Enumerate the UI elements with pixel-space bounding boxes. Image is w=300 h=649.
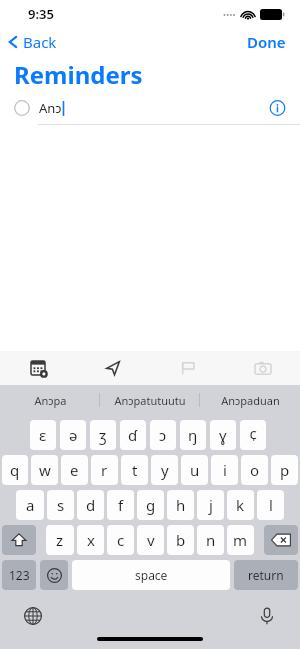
button[interactable]: space [72, 560, 230, 590]
button[interactable]: c [107, 525, 134, 555]
button[interactable]: ə [60, 420, 86, 450]
button[interactable]: j [197, 490, 224, 520]
button[interactable]: Shift [2, 525, 36, 555]
button[interactable]: q [2, 455, 28, 485]
button[interactable]: Change keyboard [20, 603, 46, 629]
button[interactable]: x [77, 525, 104, 555]
button[interactable]: a [16, 490, 44, 520]
button[interactable]: Anɔ [0, 92, 300, 124]
staticText: g [146, 495, 156, 515]
staticText: space [135, 567, 168, 583]
button[interactable]: ɗ [120, 420, 146, 450]
staticText: ʒ [99, 425, 107, 445]
staticText: ɣ [219, 425, 227, 445]
button[interactable]: ¢ [240, 420, 266, 450]
button[interactable]: Dictation [254, 603, 280, 629]
button[interactable]: d [77, 490, 104, 520]
button[interactable]: return [234, 560, 298, 590]
staticText: Anɔpaduan [221, 393, 280, 408]
staticText: e [70, 460, 79, 480]
button[interactable]: Anɔpatutuutu [100, 385, 200, 415]
button[interactable]: y [151, 455, 178, 485]
staticText: b [176, 530, 186, 550]
staticText: u [190, 460, 200, 480]
staticText: 123 [9, 567, 30, 583]
staticText: l [269, 495, 273, 515]
staticText: q [10, 460, 20, 480]
staticText: ɛ [39, 425, 47, 445]
button[interactable]: 123 [2, 560, 36, 590]
staticText: ɔ [159, 425, 167, 445]
button[interactable]: z [46, 525, 74, 555]
button[interactable]: Delete [264, 525, 298, 555]
button[interactable]: Anɔpaduan [200, 385, 300, 415]
staticText: 9:35 [28, 5, 54, 23]
button[interactable]: Details [261, 92, 294, 124]
button[interactable]: Back [0, 30, 65, 54]
staticText: i [223, 460, 227, 480]
button[interactable]: h [167, 490, 194, 520]
staticText: Done [247, 32, 286, 52]
staticText: f [118, 495, 124, 515]
button[interactable]: ŋ [180, 420, 206, 450]
staticText: n [206, 530, 216, 550]
staticText: Anɔpatutuutu [114, 393, 186, 408]
staticText: ɗ [128, 425, 138, 445]
button[interactable]: b [167, 525, 194, 555]
staticText: s [57, 495, 65, 515]
button[interactable]: l [257, 490, 284, 520]
button[interactable]: Flag [150, 351, 225, 385]
button[interactable]: ɣ [210, 420, 236, 450]
staticText: p [280, 460, 290, 480]
button[interactable]: s [47, 490, 74, 520]
button[interactable]: m [227, 525, 254, 555]
button[interactable]: t [121, 455, 148, 485]
button[interactable]: Anɔpa [0, 385, 100, 415]
staticText: d [86, 495, 96, 515]
staticText: o [250, 460, 260, 480]
button[interactable]: Emoji [40, 560, 68, 590]
staticText: x [87, 530, 95, 550]
button[interactable]: r [91, 455, 118, 485]
button[interactable]: w [31, 455, 58, 485]
button[interactable]: n [197, 525, 224, 555]
staticText: v [147, 530, 155, 550]
staticText: Anɔpa [34, 393, 67, 408]
staticText: r [101, 460, 108, 480]
staticText: m [233, 530, 248, 550]
staticText: ə [69, 425, 78, 445]
button[interactable]: o [241, 455, 268, 485]
button[interactable]: ʒ [90, 420, 116, 450]
button[interactable]: f [107, 490, 134, 520]
staticText: t [132, 460, 138, 480]
staticText: Anɔ [39, 99, 62, 117]
button[interactable]: i [211, 455, 238, 485]
button[interactable]: e [61, 455, 88, 485]
staticText: ¢ [249, 425, 258, 445]
staticText: w [39, 460, 51, 480]
button[interactable]: k [227, 490, 254, 520]
staticText: k [236, 495, 245, 515]
button[interactable]: p [271, 455, 298, 485]
staticText: c [117, 530, 125, 550]
button[interactable]: ɛ [30, 420, 56, 450]
staticText: Reminders [14, 58, 143, 91]
button[interactable]: Schedule [0, 351, 75, 385]
staticText: y [161, 460, 169, 480]
staticText: h [176, 495, 186, 515]
staticText: j [209, 495, 213, 515]
staticText: return [248, 567, 284, 583]
button[interactable]: Done [233, 28, 300, 56]
staticText: ŋ [188, 425, 198, 445]
staticText: Back [23, 32, 57, 52]
button[interactable]: ɔ [150, 420, 176, 450]
button[interactable]: Camera [225, 351, 300, 385]
button[interactable]: v [137, 525, 164, 555]
staticText: a [26, 495, 35, 515]
button[interactable]: g [137, 490, 164, 520]
staticText: z [56, 530, 64, 550]
button[interactable]: Location [75, 351, 150, 385]
button[interactable]: u [181, 455, 208, 485]
